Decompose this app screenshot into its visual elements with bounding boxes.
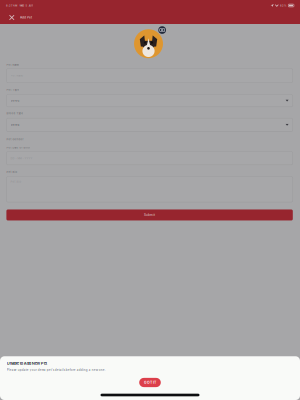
staticText: GOT IT [144, 380, 156, 385]
staticText: Select [11, 123, 20, 126]
staticText: Pet Type [6, 88, 19, 91]
button[interactable]: GOT IT [139, 378, 161, 387]
staticText: Unable to Add New Pet [7, 361, 47, 366]
button[interactable]: Close [7, 11, 16, 24]
staticText: Add Pet [20, 16, 32, 19]
staticText: Pet Bio [6, 170, 17, 174]
button[interactable]: Select [6, 94, 293, 107]
staticText: Pet Name [6, 63, 19, 66]
staticText: Pet Gender [6, 138, 23, 141]
staticText: 8:27 AM [6, 4, 17, 7]
staticText: DD - MM - YYYY [11, 157, 33, 160]
staticText: Please update your demo pet's details be… [7, 368, 106, 372]
button[interactable]: Submit [6, 209, 293, 220]
button[interactable]: Select [6, 118, 293, 131]
staticText: Wed 5 Jun [19, 4, 33, 7]
staticText: Select [11, 99, 20, 102]
staticText: Breed Type [6, 112, 23, 115]
staticText: Pet Date of Birth [6, 146, 30, 149]
staticText: 82% [280, 4, 287, 7]
staticText: Submit [144, 213, 155, 217]
staticText: Pet Name [11, 74, 24, 77]
